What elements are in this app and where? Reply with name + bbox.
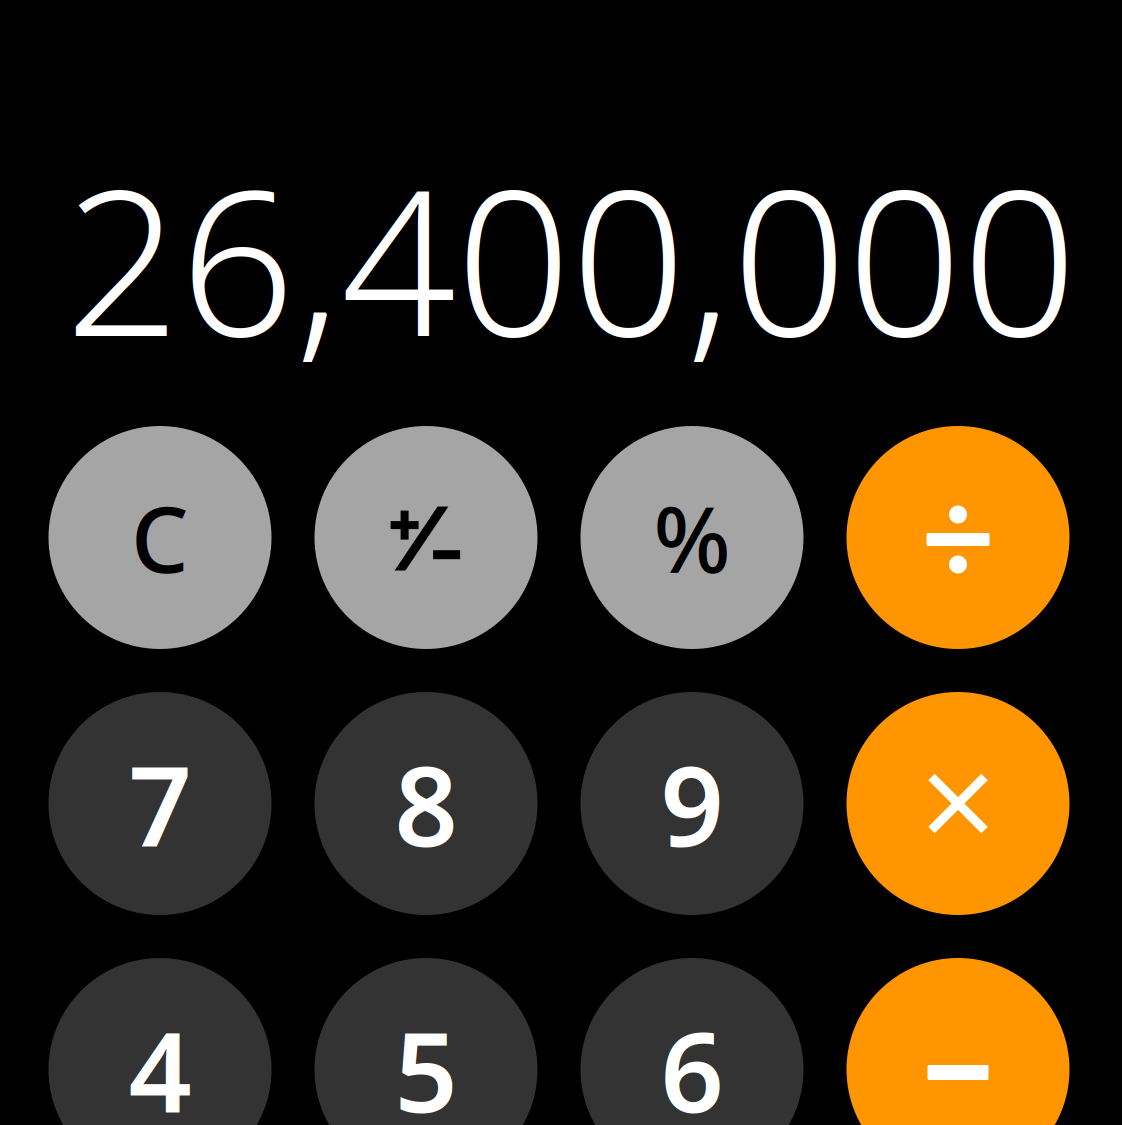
staticText: 9: [660, 730, 723, 877]
staticText: 26,400,000: [65, 124, 1077, 392]
staticText: C: [131, 477, 189, 598]
button[interactable]: %: [580, 426, 803, 649]
button[interactable]: 9: [580, 692, 803, 915]
button[interactable]: 4: [48, 958, 271, 1125]
staticText: 7: [128, 730, 191, 877]
button[interactable]: Multiply: [846, 692, 1069, 915]
button[interactable]: Plus Minus: [314, 426, 537, 649]
button[interactable]: Divide: [846, 426, 1069, 649]
staticText: 6: [660, 996, 723, 1125]
button[interactable]: C: [48, 426, 271, 649]
button[interactable]: 5: [314, 958, 537, 1125]
button[interactable]: 7: [48, 692, 271, 915]
staticText: %: [653, 477, 730, 598]
button[interactable]: Minus: [846, 958, 1069, 1125]
button[interactable]: 6: [580, 958, 803, 1125]
staticText: 4: [128, 996, 191, 1125]
staticText: 5: [394, 996, 457, 1125]
button[interactable]: 8: [314, 692, 537, 915]
staticText: 8: [394, 730, 457, 877]
